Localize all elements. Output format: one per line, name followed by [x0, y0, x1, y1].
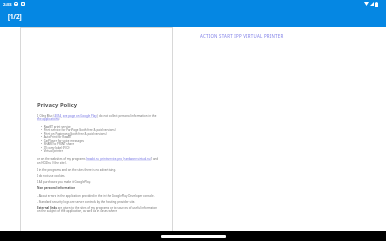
staticText: Non personal information	[37, 186, 76, 190]
staticText: • I'll carry label (F/O)	[41, 146, 70, 150]
staticText: • CarPlayer for voice messages	[41, 139, 85, 143]
staticText: I in the programs and on the sites there…	[37, 168, 116, 172]
staticText: • AutoPrint for RawBT	[41, 135, 72, 139]
staticText: • Print on Papierang (both free & paid v…	[41, 132, 107, 136]
button[interactable]: [1/2]	[0, 8, 30, 23]
staticText: External links are given to the sites of…	[37, 206, 158, 210]
staticText: 2:33	[3, 1, 12, 7]
staticText: I do not use cookies.	[37, 174, 66, 178]
staticText: the applications:	[37, 117, 60, 121]
staticText: on the subject of the application, as we…	[37, 209, 118, 213]
staticText: • Virtual printer	[41, 149, 63, 153]
staticText: an HD2(ru ) (the site ).	[37, 161, 68, 165]
staticText: or on the websites of my programs (rawbt…	[37, 157, 159, 161]
staticText: I All purchases you make it GooglePlay.	[37, 180, 91, 184]
staticText: - Standard security logs are server cont…	[37, 200, 136, 204]
button[interactable]: Home	[161, 235, 226, 238]
staticText: • Print service for PariPage (both free …	[41, 128, 116, 132]
staticText: [1/2]	[8, 12, 22, 20]
staticText: • RawBT print service	[41, 125, 71, 129]
staticText: - About errors in the application provid…	[37, 194, 155, 198]
staticText: • SHARE to PRINT share	[41, 142, 75, 146]
staticText: ACTION START IPP VIRTUAL PRINTER	[200, 33, 284, 39]
staticText: I, Oleg Mur. (4054, see page on Google P…	[37, 114, 157, 118]
staticText: Privacy Policy	[37, 101, 78, 109]
